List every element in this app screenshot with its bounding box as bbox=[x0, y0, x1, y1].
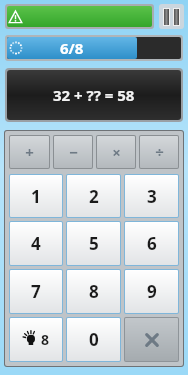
button[interactable]: + bbox=[10, 136, 49, 168]
staticText: 8 bbox=[41, 330, 50, 349]
staticText: 6 bbox=[147, 232, 157, 255]
staticText: − bbox=[69, 142, 78, 162]
staticText: 9 bbox=[147, 280, 157, 303]
button[interactable]: 5 bbox=[67, 222, 120, 265]
button[interactable]: Delete bbox=[125, 318, 178, 361]
staticText: 0 bbox=[89, 328, 99, 351]
staticText: ÷ bbox=[155, 142, 164, 162]
button[interactable]: 8 bbox=[67, 270, 120, 313]
button[interactable]: 9 bbox=[125, 270, 178, 313]
staticText: 8 bbox=[89, 280, 99, 303]
button[interactable]: − bbox=[54, 136, 92, 168]
staticText: 2 bbox=[89, 185, 99, 208]
staticText: 3 bbox=[147, 185, 157, 208]
button[interactable]: 6 bbox=[125, 222, 178, 265]
staticText: 7 bbox=[31, 280, 41, 303]
button[interactable]: Hint bbox=[10, 318, 62, 361]
button[interactable]: Pause bbox=[159, 4, 184, 29]
button[interactable]: 1 bbox=[10, 175, 62, 217]
staticText: × bbox=[112, 142, 121, 162]
button[interactable]: ÷ bbox=[140, 136, 178, 168]
button[interactable]: 7 bbox=[10, 270, 62, 313]
button[interactable]: 2 bbox=[67, 175, 120, 217]
staticText: 4 bbox=[31, 232, 41, 255]
staticText: 6/8 bbox=[60, 38, 84, 58]
button[interactable]: 3 bbox=[125, 175, 178, 217]
staticText: 1 bbox=[31, 185, 41, 208]
staticText: 5 bbox=[89, 232, 99, 255]
button[interactable]: 0 bbox=[67, 318, 120, 361]
staticText: 32 + ?? = 58 bbox=[53, 85, 135, 105]
staticText: + bbox=[25, 142, 34, 162]
button[interactable]: × bbox=[97, 136, 135, 168]
button[interactable]: 4 bbox=[10, 222, 62, 265]
